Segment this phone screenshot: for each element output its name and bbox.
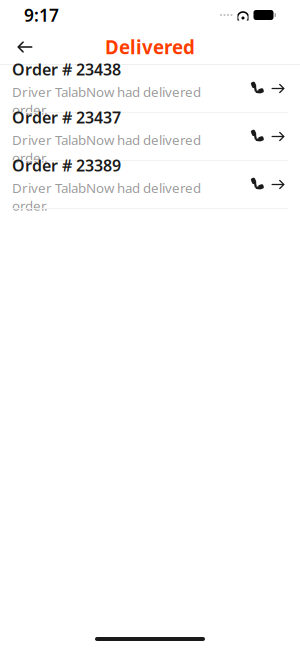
staticText: Driver TalabNow had delivered order. [12, 131, 201, 166]
button[interactable]: Order # 23389 [0, 161, 300, 208]
button[interactable]: Order # 23437 [0, 113, 300, 160]
staticText: Order # 23389 [12, 155, 121, 176]
button[interactable]: Order # 23438 [0, 65, 300, 112]
staticText: Delivered [105, 35, 195, 59]
staticText: Order # 23437 [12, 107, 121, 128]
staticText: Driver TalabNow had delivered order. [12, 83, 201, 118]
staticText: Driver TalabNow had delivered order. [12, 179, 201, 214]
staticText: 9:17 [24, 3, 59, 26]
button[interactable]: Back [8, 30, 42, 64]
staticText: Order # 23438 [12, 59, 121, 80]
